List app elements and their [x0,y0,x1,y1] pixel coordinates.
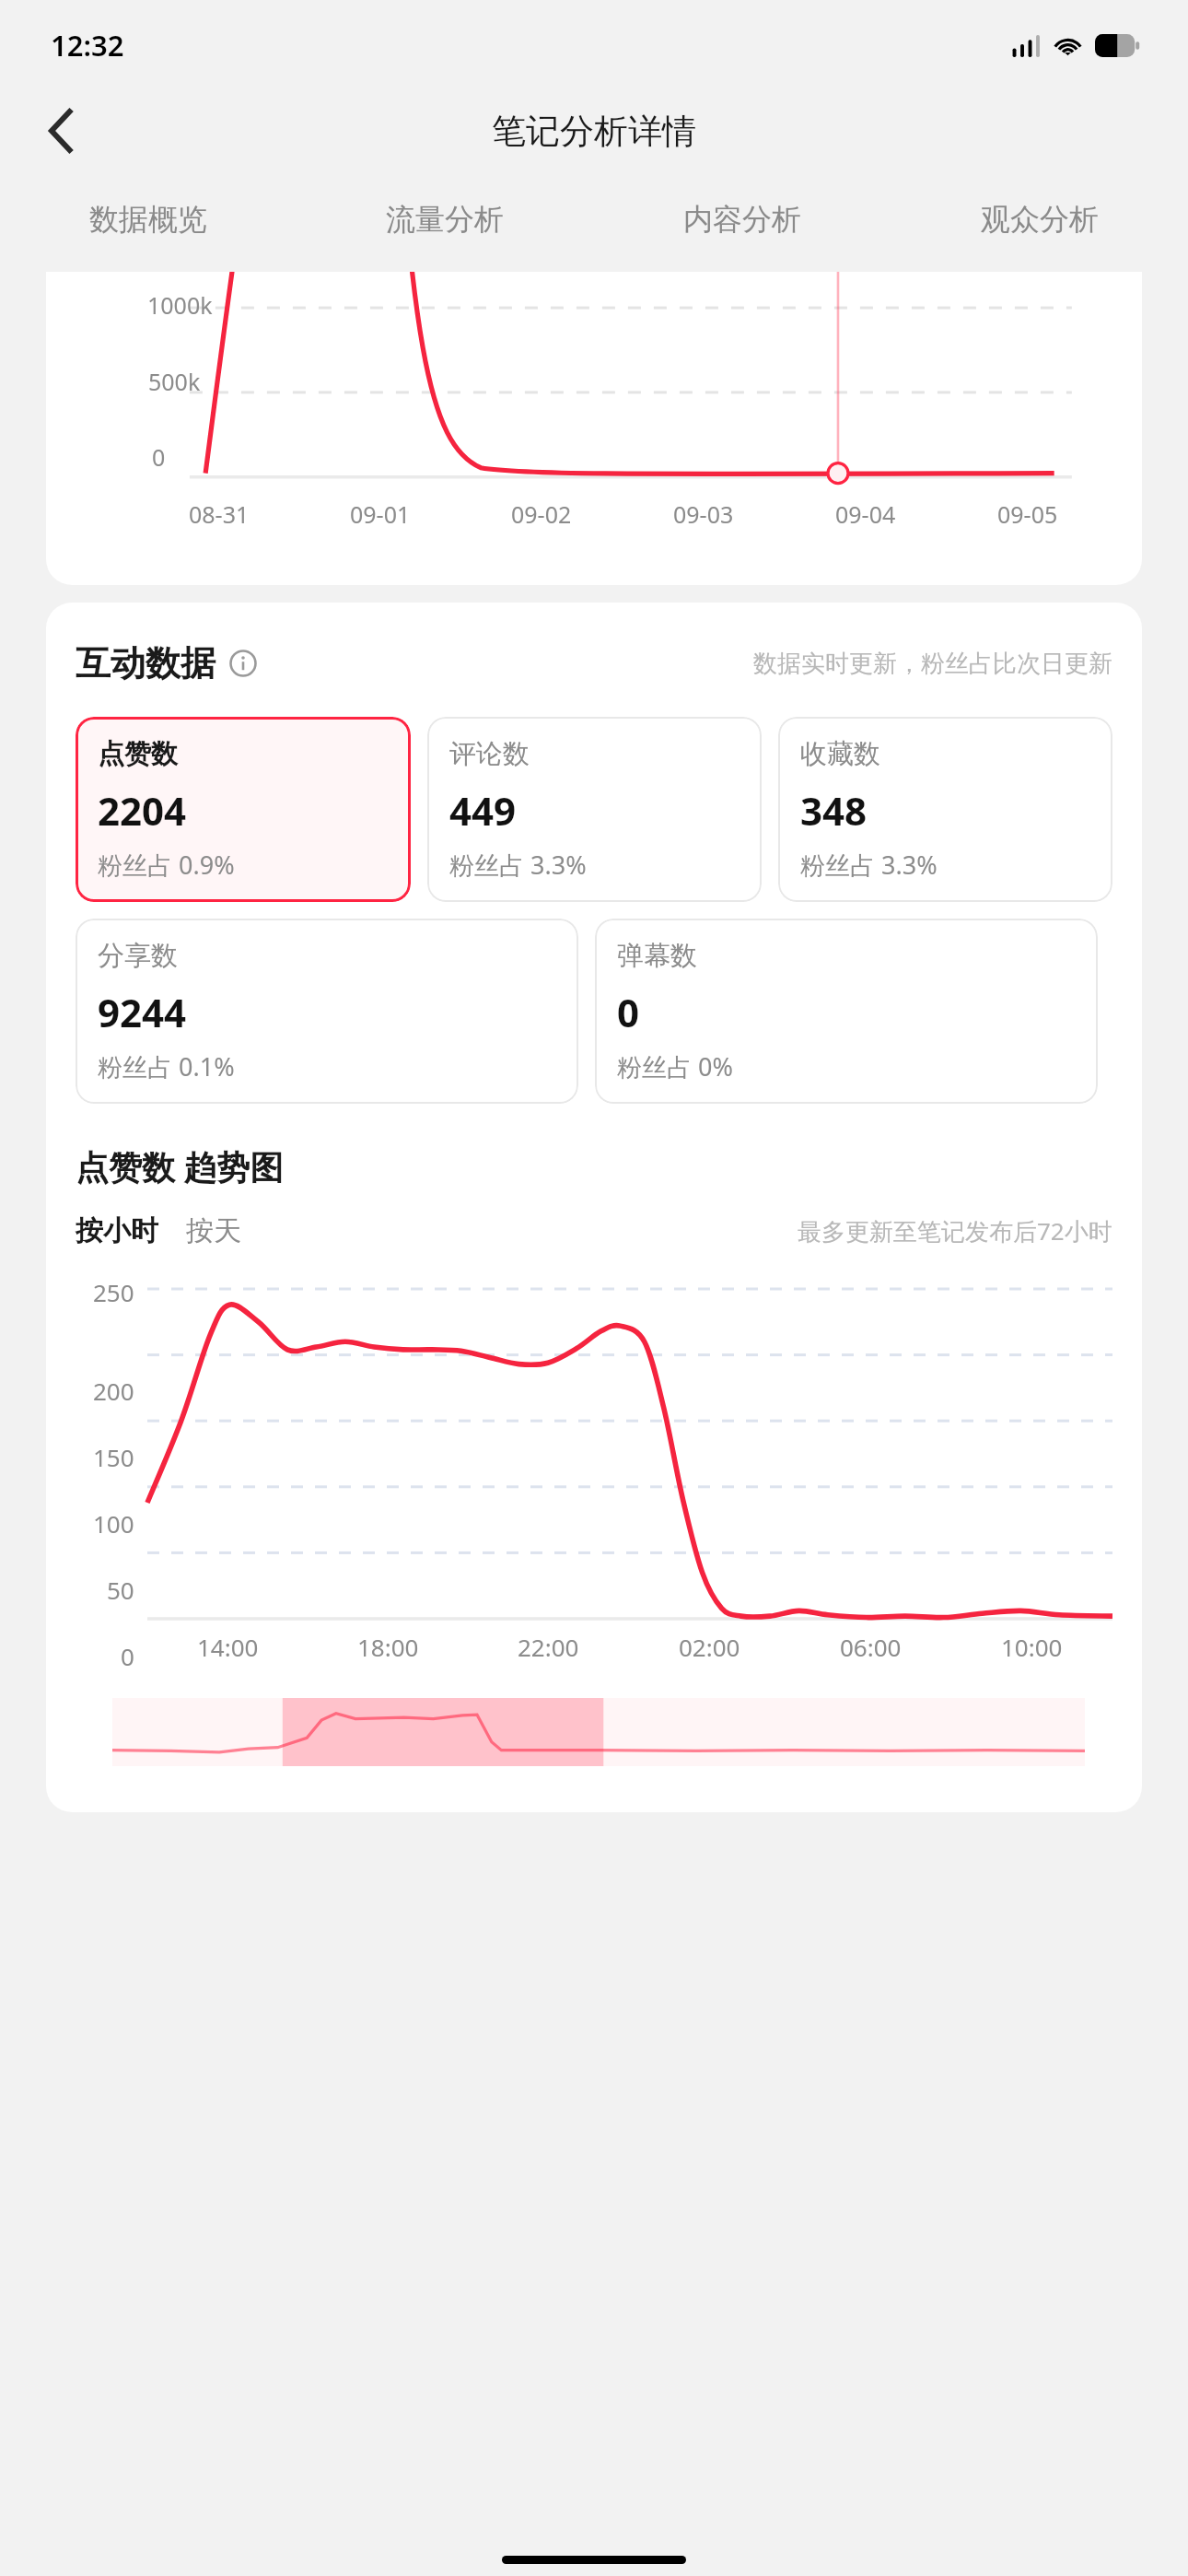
staticText: 09-04 [835,498,896,530]
staticText: 10:00 [1001,1631,1063,1663]
staticText: 08-31 [189,498,250,530]
button[interactable]: 弹幕数 [595,919,1098,1104]
staticText: 点赞数 趋势图 [76,1144,284,1189]
staticText: 流量分析 [386,201,504,238]
staticText: 200 [93,1375,134,1407]
staticText: 粉丝占 0.9% [98,848,235,882]
staticText: 数据实时更新，粉丝占比次日更新 [753,649,1112,679]
staticText: 粉丝占 0% [617,1049,733,1083]
staticText: 粉丝占 3.3% [449,848,587,882]
staticText: 06:00 [840,1631,902,1663]
button[interactable]: 流量分析 [297,177,593,262]
staticText: 内容分析 [683,201,801,238]
button[interactable]: 按小时 [76,1213,158,1248]
button[interactable]: 观众分析 [891,177,1188,262]
staticText: 粉丝占 3.3% [800,848,938,882]
staticText: 50 [107,1574,134,1606]
staticText: 数据概览 [89,201,207,238]
button[interactable]: 点赞数 [76,717,411,902]
staticText: 09-03 [673,498,734,530]
staticText: 0 [152,441,166,473]
staticText: 0 [617,986,640,1038]
staticText: 最多更新至笔记发布后72小时 [798,1214,1112,1247]
staticText: 09-05 [997,498,1058,530]
staticText: 互动数据 [76,641,215,685]
staticText: 分享数 [98,939,178,973]
button[interactable]: Info [227,647,260,680]
staticText: 评论数 [449,737,530,771]
staticText: 观众分析 [981,201,1099,238]
button[interactable]: 内容分析 [593,177,891,262]
staticText: 09-01 [350,498,411,530]
staticText: 0 [121,1640,134,1672]
staticText: 500k [148,366,201,397]
staticText: 449 [449,784,517,837]
staticText: 12:32 [51,26,124,64]
staticText: 348 [800,784,868,837]
button[interactable]: 按天 [186,1213,241,1248]
staticText: 100 [93,1507,134,1540]
staticText: 点赞数 [98,737,178,771]
button[interactable]: Back [28,96,98,166]
staticText: 粉丝占 0.1% [98,1049,235,1083]
staticText: 2204 [98,784,187,837]
staticText: 按小时 [76,1213,158,1248]
staticText: 9244 [98,986,187,1038]
staticText: 150 [93,1441,134,1473]
button[interactable]: 收藏数 [778,717,1112,902]
staticText: 18:00 [357,1631,419,1663]
staticText: 14:00 [197,1631,259,1663]
staticText: 02:00 [679,1631,740,1663]
staticText: 收藏数 [800,737,880,771]
button[interactable]: 分享数 [76,919,578,1104]
staticText: 250 [93,1276,134,1308]
staticText: 1000k [147,289,213,321]
staticText: 按天 [186,1213,241,1248]
staticText: 09-02 [511,498,572,530]
staticText: 弹幕数 [617,939,697,973]
staticText: 22:00 [518,1631,579,1663]
staticText: 笔记分析详情 [492,110,696,153]
button[interactable]: 数据概览 [0,177,297,262]
button[interactable]: 评论数 [427,717,762,902]
